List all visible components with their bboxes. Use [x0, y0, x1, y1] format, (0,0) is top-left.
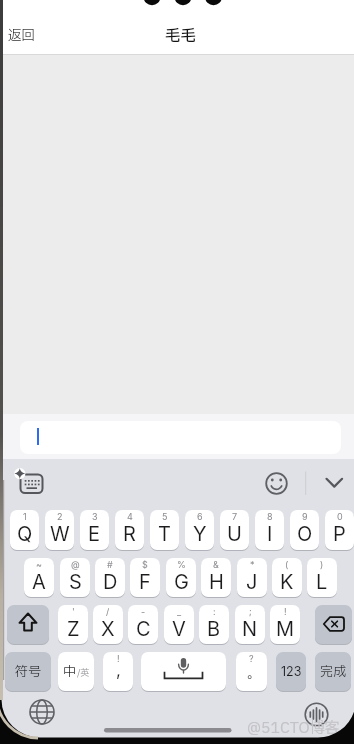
button[interactable] — [26, 696, 58, 728]
staticText: P — [333, 522, 346, 546]
button[interactable]: 符号 — [5, 652, 51, 691]
button[interactable]: 返回 — [0, 14, 52, 54]
button[interactable]: ) — [307, 558, 337, 597]
staticText: % — [177, 559, 186, 570]
staticText: : — [213, 606, 216, 617]
staticText: 6 — [197, 511, 203, 522]
button[interactable] — [301, 699, 332, 730]
staticText: M — [276, 617, 295, 641]
staticText: * — [250, 559, 255, 570]
button[interactable] — [318, 468, 350, 498]
staticText: 符号 — [15, 662, 42, 681]
staticText: 7 — [232, 511, 238, 522]
button[interactable]: ! — [103, 652, 133, 691]
staticText: W — [50, 522, 70, 546]
staticText: 3 — [92, 511, 98, 522]
button[interactable]: 9 — [290, 510, 319, 550]
button[interactable] — [20, 421, 341, 454]
button[interactable]: 123 — [276, 652, 306, 691]
staticText: / — [106, 606, 110, 617]
staticText: 123 — [281, 664, 302, 679]
button[interactable]: ~ — [24, 558, 54, 597]
button[interactable]: : — [199, 605, 229, 644]
button[interactable]: 2 — [45, 510, 74, 550]
staticText: - — [141, 606, 146, 617]
button[interactable]: 6 — [185, 510, 214, 550]
button[interactable]: % — [166, 558, 196, 597]
staticText: Y — [193, 522, 207, 546]
staticText: /英 — [77, 666, 90, 679]
button[interactable]: 4 — [115, 510, 144, 550]
button[interactable]: & — [201, 558, 231, 597]
staticText: 5 — [162, 511, 168, 522]
staticText: V — [172, 617, 186, 641]
staticText: ) — [320, 559, 324, 570]
staticText: J — [246, 570, 258, 594]
button[interactable]: @ — [60, 558, 90, 597]
staticText: 9 — [302, 511, 308, 522]
staticText: U — [227, 522, 242, 546]
button[interactable]: ! — [270, 605, 300, 644]
staticText: 。 — [247, 664, 261, 683]
staticText: ? — [249, 653, 254, 664]
staticText: $ — [142, 559, 148, 570]
button[interactable]: 8 — [255, 510, 284, 550]
staticText: N — [242, 617, 258, 641]
button[interactable] — [315, 605, 352, 644]
staticText: C — [136, 617, 151, 641]
button[interactable]: ; — [235, 605, 265, 644]
button[interactable] — [262, 468, 292, 498]
staticText: B — [207, 617, 221, 641]
staticText: G — [174, 570, 189, 594]
staticText: 8 — [267, 511, 273, 522]
button[interactable]: / — [93, 605, 123, 644]
staticText: @51CTO博客 — [247, 717, 340, 739]
staticText: D — [103, 570, 118, 594]
staticText: O — [297, 522, 313, 546]
button[interactable]: 1 — [10, 510, 39, 550]
staticText: F — [139, 570, 151, 594]
button[interactable]: - — [128, 605, 158, 644]
button[interactable]: _ — [164, 605, 194, 644]
button[interactable]: * — [237, 558, 267, 597]
button[interactable]: ' — [58, 605, 88, 644]
button[interactable]: ( — [272, 558, 302, 597]
staticText: # — [107, 559, 113, 570]
staticText: K — [280, 570, 294, 594]
staticText: I — [267, 522, 273, 546]
button[interactable]: 7 — [220, 510, 249, 550]
staticText: ; — [249, 606, 252, 617]
button[interactable]: 0 — [325, 510, 354, 550]
staticText: T — [158, 522, 171, 546]
button[interactable]: 中 — [58, 652, 94, 691]
staticText: 0 — [337, 511, 343, 522]
staticText: 4 — [127, 511, 133, 522]
button[interactable]: 完成 — [315, 652, 351, 691]
staticText: Z — [67, 617, 80, 641]
staticText: & — [213, 559, 219, 570]
button[interactable] — [12, 464, 54, 500]
staticText: L — [316, 570, 328, 594]
staticText: Q — [17, 522, 33, 546]
button[interactable]: $ — [130, 558, 160, 597]
staticText: 完成 — [320, 662, 347, 681]
button[interactable]: # — [95, 558, 125, 597]
staticText: 中 — [63, 662, 77, 682]
staticText: S — [69, 570, 82, 594]
staticText: , — [116, 660, 121, 681]
staticText: @ — [71, 559, 80, 570]
button[interactable]: ? — [236, 652, 267, 691]
staticText: H — [209, 570, 224, 594]
staticText: 返回 — [8, 26, 35, 46]
button[interactable]: 3 — [80, 510, 109, 550]
staticText: R — [123, 522, 136, 546]
button[interactable] — [141, 652, 226, 691]
button[interactable] — [7, 605, 49, 644]
staticText: ! — [284, 606, 287, 617]
staticText: E — [88, 522, 101, 546]
button[interactable]: 5 — [150, 510, 179, 550]
staticText: A — [32, 570, 46, 594]
staticText: 2 — [57, 511, 63, 522]
staticText: _ — [177, 606, 182, 617]
staticText: ' — [72, 606, 75, 617]
